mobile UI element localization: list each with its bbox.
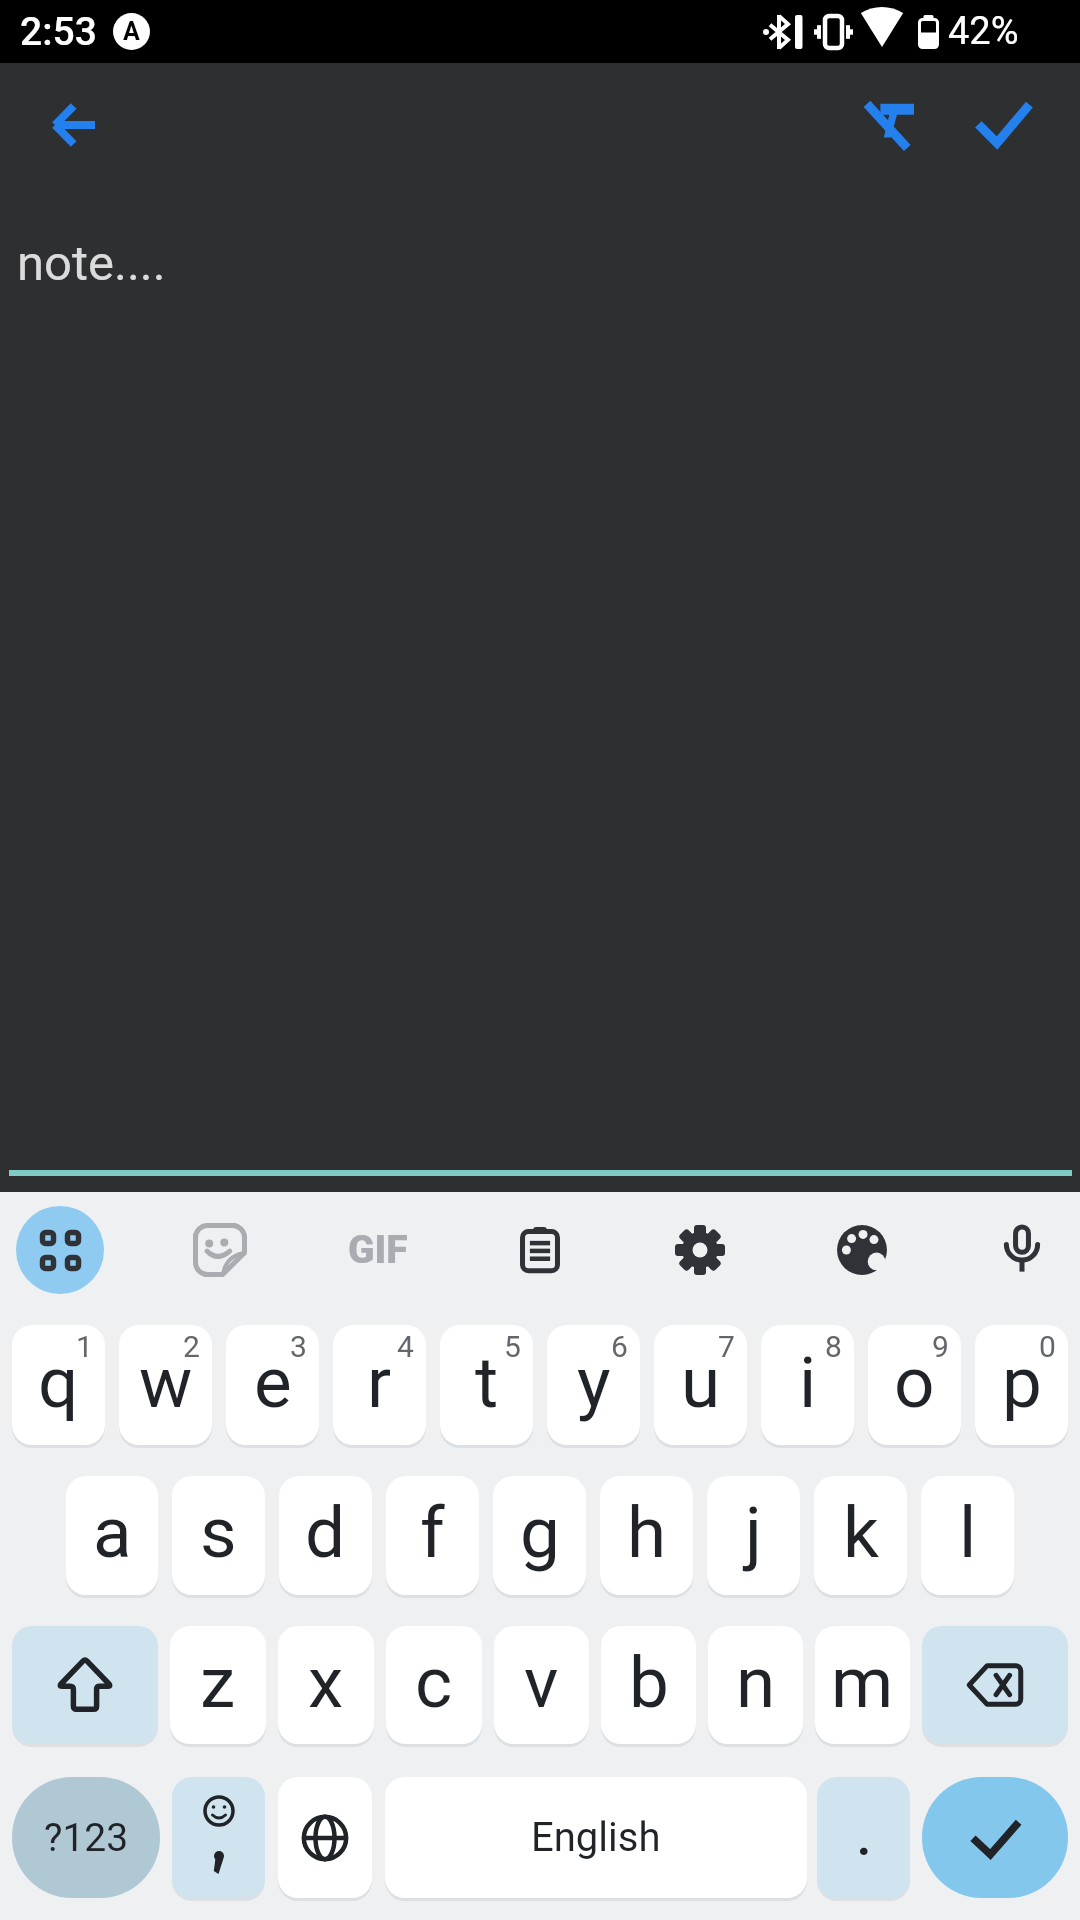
button[interactable]: b [601,1626,696,1744]
staticText: e [254,1341,292,1424]
button[interactable] [172,1777,265,1898]
button[interactable]: c [386,1626,482,1744]
button[interactable]: f [386,1476,479,1595]
button[interactable]: d [279,1476,372,1595]
staticText: 0 [1039,1329,1056,1364]
button[interactable] [656,1206,744,1294]
button[interactable]: k [814,1476,907,1595]
staticText: n [736,1641,776,1724]
staticText: g [520,1491,560,1574]
staticText: 4 [397,1329,414,1364]
staticText: 42% [948,9,1019,54]
staticText: m [831,1641,894,1724]
button[interactable]: x [278,1626,374,1744]
staticText: s [200,1491,237,1574]
staticText: l [959,1491,977,1574]
button[interactable] [972,93,1036,157]
button[interactable]: j [707,1476,800,1595]
staticText: x [308,1641,344,1724]
button[interactable]: t [440,1325,533,1445]
button[interactable]: l [921,1476,1014,1595]
staticText: 8 [825,1329,842,1364]
button[interactable]: English [385,1777,807,1898]
staticText: 7 [718,1329,735,1364]
staticText: 2 [183,1329,200,1364]
button[interactable]: . [817,1777,910,1898]
staticText: o [894,1341,935,1424]
staticText: a [93,1491,132,1574]
button[interactable]: z [170,1626,266,1744]
staticText: d [305,1491,346,1574]
staticText: note.... [17,235,166,292]
staticText: k [843,1491,879,1574]
staticText: z [200,1641,236,1724]
staticText: q [38,1341,79,1424]
button[interactable] [176,1206,264,1294]
button[interactable]: w [119,1325,212,1445]
button[interactable]: u [654,1325,747,1445]
button[interactable]: p [975,1325,1068,1445]
staticText: u [681,1341,721,1424]
staticText: 3 [290,1329,307,1364]
staticText: p [1002,1341,1042,1424]
staticText: . [857,1810,871,1866]
button[interactable] [978,1206,1066,1294]
button[interactable]: h [600,1476,693,1595]
button[interactable] [818,1206,906,1294]
staticText: v [524,1641,559,1724]
button[interactable]: s [172,1476,265,1595]
staticText: b [629,1641,669,1724]
staticText: 6 [611,1329,628,1364]
staticText: h [627,1491,667,1574]
staticText: 5 [504,1329,521,1364]
staticText: ?123 [44,1815,129,1861]
button[interactable]: r [333,1325,426,1445]
button[interactable]: m [815,1626,910,1744]
button[interactable]: a [66,1476,158,1595]
staticText: w [139,1341,193,1424]
staticText: A [123,17,140,46]
button[interactable]: GIF [334,1206,422,1294]
staticText: 1 [76,1329,93,1364]
staticText: c [415,1641,453,1724]
staticText: 2:53 [20,9,97,55]
staticText: t [475,1341,499,1424]
button[interactable]: v [494,1626,589,1744]
staticText: f [420,1491,445,1574]
staticText: 9 [932,1329,949,1364]
button[interactable]: i [761,1325,854,1445]
button[interactable] [922,1626,1068,1744]
staticText: j [745,1491,762,1574]
button[interactable]: q [12,1325,105,1445]
button[interactable]: ?123 [12,1777,160,1898]
button[interactable] [858,93,922,157]
button[interactable]: e [226,1325,319,1445]
button[interactable] [278,1777,372,1898]
button[interactable]: g [493,1476,586,1595]
button[interactable] [16,1206,104,1294]
staticText: r [367,1341,392,1424]
button[interactable] [43,93,107,157]
button[interactable] [496,1206,584,1294]
button[interactable] [922,1777,1068,1898]
button[interactable] [12,1626,158,1744]
button[interactable]: y [547,1325,640,1445]
button[interactable]: n [708,1626,803,1744]
staticText: English [531,1814,661,1861]
staticText: i [799,1341,817,1424]
button[interactable]: o [868,1325,961,1445]
staticText: GIF [348,1227,408,1273]
staticText: y [577,1341,611,1424]
